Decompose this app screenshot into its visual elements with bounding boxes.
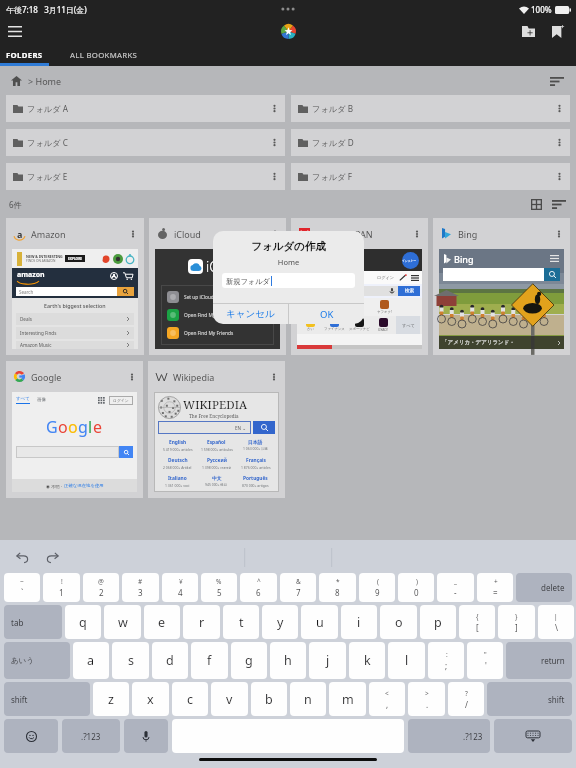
staticText: r bbox=[199, 614, 205, 631]
button[interactable]: New folder bbox=[513, 18, 543, 44]
button[interactable]: OK bbox=[289, 304, 364, 324]
button[interactable]: ? bbox=[448, 682, 484, 716]
button[interactable]: p bbox=[420, 605, 456, 639]
button[interactable]: t bbox=[223, 605, 259, 639]
button[interactable]: Sort bookmarks bbox=[549, 194, 569, 214]
button[interactable]: % bbox=[201, 573, 237, 602]
button[interactable]: .?123 bbox=[408, 719, 490, 753]
button[interactable]: Add bookmark bbox=[543, 18, 573, 44]
button[interactable]: w bbox=[104, 605, 141, 639]
button[interactable]: y bbox=[262, 605, 298, 639]
button[interactable]: o bbox=[380, 605, 417, 639]
button[interactable]: フォルダ B bbox=[291, 95, 570, 122]
button[interactable]: a bbox=[73, 642, 109, 679]
staticText: 3 bbox=[138, 587, 143, 598]
button[interactable]: + bbox=[477, 573, 513, 602]
button[interactable]: ALL BOOKMARKS bbox=[49, 44, 159, 66]
button[interactable]: s bbox=[112, 642, 149, 679]
button[interactable]: z bbox=[93, 682, 129, 716]
button[interactable]: フォルダ F bbox=[291, 163, 570, 190]
staticText: delete bbox=[541, 582, 565, 593]
button[interactable]: ¥ bbox=[162, 573, 198, 602]
button[interactable]: i bbox=[341, 605, 377, 639]
button[interactable]: Google bbox=[6, 361, 143, 498]
button[interactable]: | bbox=[538, 605, 574, 639]
button[interactable]: d bbox=[152, 642, 188, 679]
button[interactable]: return bbox=[506, 642, 572, 679]
button[interactable]: @ bbox=[83, 573, 119, 602]
button[interactable]: _ bbox=[437, 573, 474, 602]
button[interactable]: k bbox=[349, 642, 385, 679]
button[interactable]: q bbox=[65, 605, 101, 639]
button[interactable]: " bbox=[467, 642, 503, 679]
staticText: .?123 bbox=[81, 731, 101, 742]
button[interactable]: Emoji bbox=[4, 719, 58, 753]
staticText: o bbox=[58, 416, 68, 438]
button[interactable]: tab bbox=[4, 605, 62, 639]
button[interactable]: shift bbox=[487, 682, 572, 716]
button[interactable]: c bbox=[172, 682, 208, 716]
button[interactable]: > bbox=[408, 682, 445, 716]
button[interactable]: delete bbox=[516, 573, 572, 602]
button[interactable]: ( bbox=[359, 573, 395, 602]
button[interactable]: # bbox=[122, 573, 159, 602]
button[interactable]: b bbox=[251, 682, 287, 716]
button[interactable]: e bbox=[144, 605, 180, 639]
button[interactable]: { bbox=[459, 605, 495, 639]
button[interactable]: FOLDERS bbox=[0, 44, 49, 66]
button[interactable]: ^ bbox=[240, 573, 277, 602]
button[interactable]: Wikipedia bbox=[148, 361, 285, 498]
button[interactable]: Redo bbox=[41, 546, 63, 568]
button[interactable]: キャンセル bbox=[213, 304, 288, 324]
button[interactable]: Sort bbox=[547, 71, 567, 91]
button[interactable]: Yahoo! JAPAN bbox=[291, 218, 428, 355]
button[interactable]: * bbox=[319, 573, 356, 602]
button[interactable]: n bbox=[290, 682, 326, 716]
staticText: 870 000+ artigos bbox=[242, 483, 269, 488]
button[interactable]: m bbox=[329, 682, 366, 716]
button[interactable]: f bbox=[191, 642, 228, 679]
button[interactable]: Undo bbox=[11, 546, 33, 568]
button[interactable]: Hide keyboard bbox=[494, 719, 572, 753]
button[interactable]: l bbox=[388, 642, 425, 679]
button[interactable]: フォルダ A bbox=[6, 95, 285, 122]
staticText: あいう bbox=[11, 656, 35, 665]
button[interactable]: shift bbox=[4, 682, 90, 716]
staticText: z bbox=[108, 691, 114, 708]
staticText: e bbox=[93, 416, 103, 438]
button[interactable]: r bbox=[183, 605, 220, 639]
staticText: ファイナンス bbox=[324, 327, 345, 331]
staticText: h bbox=[284, 652, 292, 669]
button[interactable]: < bbox=[369, 682, 405, 716]
button[interactable]: フォルダ D bbox=[291, 129, 570, 156]
button[interactable]: Voice input bbox=[124, 719, 168, 753]
staticText: ^ bbox=[257, 577, 261, 586]
button[interactable]: ! bbox=[43, 573, 80, 602]
button[interactable]: ~ bbox=[4, 573, 40, 602]
button[interactable]: j bbox=[309, 642, 346, 679]
button[interactable]: a bbox=[6, 218, 144, 355]
staticText: ALL BOOKMARKS bbox=[70, 50, 138, 61]
button[interactable]: g bbox=[231, 642, 267, 679]
staticText: [ bbox=[476, 622, 479, 633]
staticText: o bbox=[395, 614, 403, 631]
button[interactable]: フォルダ C bbox=[6, 129, 285, 156]
staticText: 正確な現在地を使用 bbox=[64, 483, 104, 489]
button[interactable]: Menu bbox=[0, 18, 30, 44]
button[interactable]: u bbox=[301, 605, 338, 639]
button[interactable]: .?123 bbox=[62, 719, 120, 753]
button[interactable]: iCloud bbox=[149, 218, 286, 355]
button[interactable]: & bbox=[280, 573, 316, 602]
button[interactable]: : bbox=[428, 642, 464, 679]
button[interactable]: v bbox=[211, 682, 248, 716]
button[interactable]: Grid view bbox=[526, 194, 546, 214]
button[interactable]: x bbox=[132, 682, 169, 716]
button[interactable]: Bing bbox=[433, 218, 570, 355]
button[interactable]: あいう bbox=[4, 642, 70, 679]
button[interactable]: ) bbox=[398, 573, 434, 602]
button[interactable]: h bbox=[270, 642, 306, 679]
staticText: FINDS ON AMAZON bbox=[26, 259, 56, 263]
button[interactable]: } bbox=[498, 605, 535, 639]
button[interactable]: フォルダ E bbox=[6, 163, 285, 190]
